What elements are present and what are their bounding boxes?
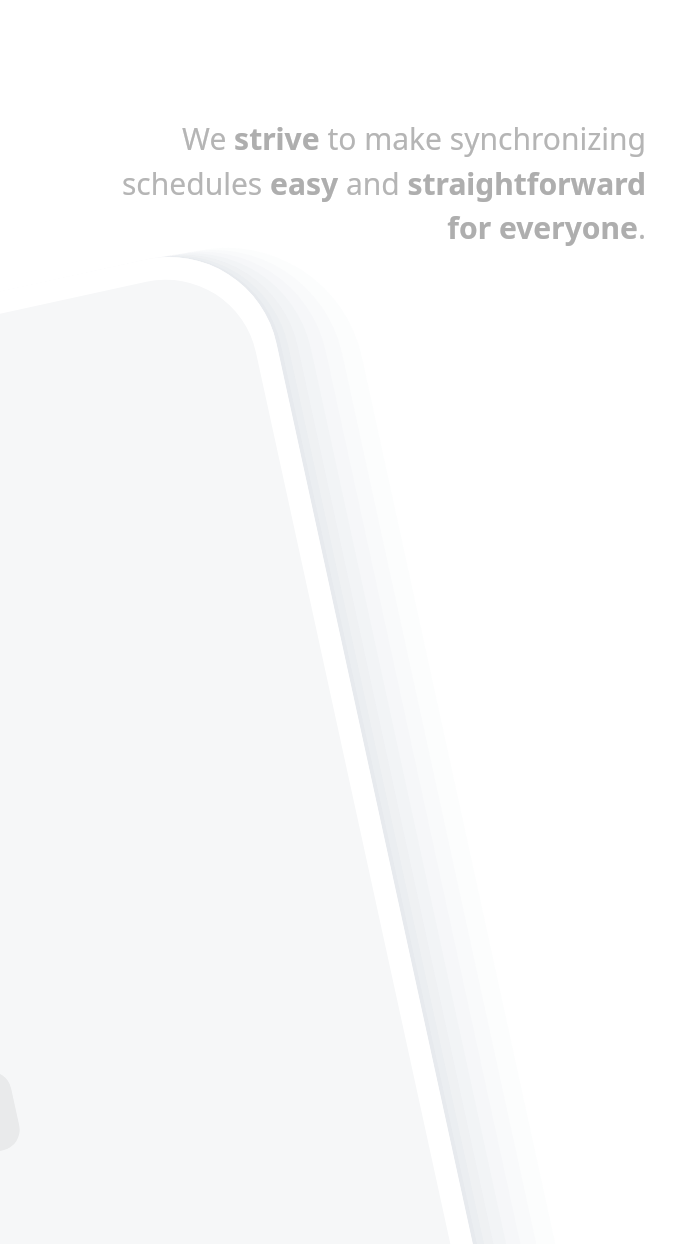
button[interactable]: Scheduling app phone preview: [0, 0, 700, 1244]
button[interactable]: We strive to make synchronizing schedule…: [98, 118, 646, 247]
